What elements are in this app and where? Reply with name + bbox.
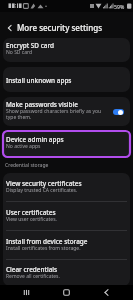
staticText: Encrypt SD card [6,41,55,50]
staticText: User certificates [6,208,56,217]
staticText: Display trusted CA certificates. [6,187,78,194]
button[interactable]: Make passwords visible toggle [113,109,124,115]
button[interactable]: Device admin apps [3,131,130,157]
button[interactable]: Clear credentials [3,260,130,286]
button[interactable]: User certificates [3,202,130,230]
staticText: Credential storage [5,162,49,169]
button[interactable]: Home [59,285,74,300]
staticText: Device admin apps [6,135,64,144]
staticText: No active apps [6,143,41,150]
staticText: Install from device storage [6,237,88,246]
staticText: Install unknown apps [6,76,72,85]
staticText: More security settings [17,22,103,33]
staticText: 59% [114,3,125,10]
button[interactable]: Make passwords visible [3,97,130,126]
staticText: No SD card [6,49,33,56]
button[interactable]: Navigate up [3,21,16,34]
button[interactable]: Encrypt SD card [3,38,130,62]
button[interactable]: View security certificates [3,173,130,201]
button[interactable]: Install from device storage [3,231,130,259]
staticText: View user certificates. [6,216,57,223]
staticText: Make passwords visible [6,100,78,109]
button[interactable]: Install unknown apps [3,67,130,92]
button[interactable]: Recent apps [19,285,34,300]
staticText: Install certificates from storage. [6,245,81,252]
staticText: Show password characters briefly as you … [6,108,111,121]
button[interactable]: Back [99,285,114,300]
staticText: Clear credentials [6,265,58,274]
staticText: View security certificates [6,179,82,188]
staticText: Remove all certificates. [6,273,60,280]
